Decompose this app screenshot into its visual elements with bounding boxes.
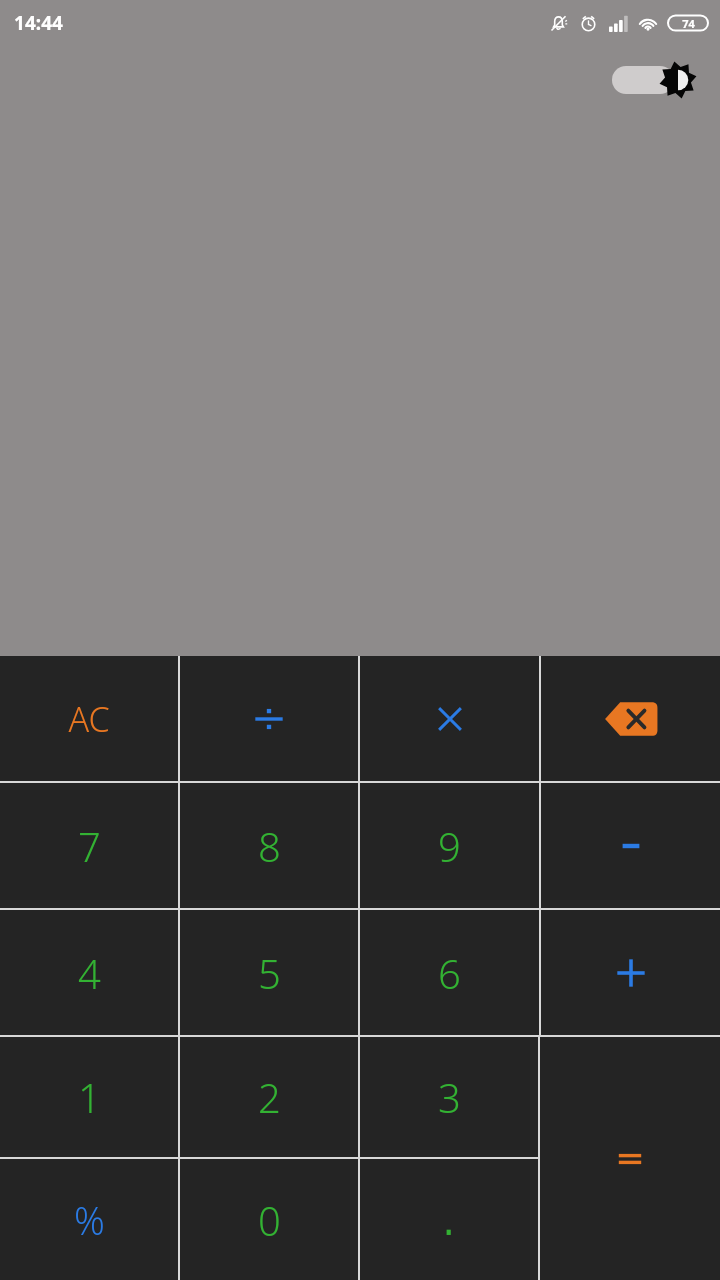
- button[interactable]: 1: [0, 1037, 178, 1157]
- button[interactable]: Minus: [541, 783, 720, 908]
- button[interactable]: Backspace: [541, 656, 720, 781]
- staticText: 0: [258, 1193, 281, 1247]
- button[interactable]: AC: [0, 656, 178, 781]
- staticText: 14:44: [14, 10, 63, 36]
- button[interactable]: Plus: [541, 910, 720, 1035]
- staticText: 3: [438, 1070, 461, 1124]
- staticText: 4: [78, 946, 101, 1000]
- staticText: 74: [682, 16, 695, 31]
- button[interactable]: Percent: [0, 1159, 178, 1280]
- button[interactable]: Multiply: [360, 656, 539, 781]
- staticText: 1: [78, 1070, 101, 1124]
- staticText: 8: [258, 819, 281, 873]
- button[interactable]: 9: [360, 783, 539, 908]
- button[interactable]: 4: [0, 910, 178, 1035]
- button[interactable]: 0: [180, 1159, 358, 1280]
- staticText: 5: [258, 946, 281, 1000]
- staticText: 7: [78, 819, 101, 873]
- button[interactable]: Brightness: [612, 60, 702, 100]
- button[interactable]: Equals: [540, 1037, 720, 1280]
- staticText: AC: [68, 696, 110, 742]
- staticText: 2: [258, 1070, 281, 1124]
- button[interactable]: 7: [0, 783, 178, 908]
- button[interactable]: 8: [180, 783, 358, 908]
- button[interactable]: 3: [360, 1037, 538, 1157]
- button[interactable]: Divide: [180, 656, 358, 781]
- button[interactable]: 6: [360, 910, 539, 1035]
- staticText: %: [74, 1194, 105, 1246]
- button[interactable]: 5: [180, 910, 358, 1035]
- button[interactable]: Decimal point: [360, 1159, 538, 1280]
- staticText: 6: [438, 946, 461, 1000]
- staticText: 9: [438, 819, 461, 873]
- button[interactable]: 2: [180, 1037, 358, 1157]
